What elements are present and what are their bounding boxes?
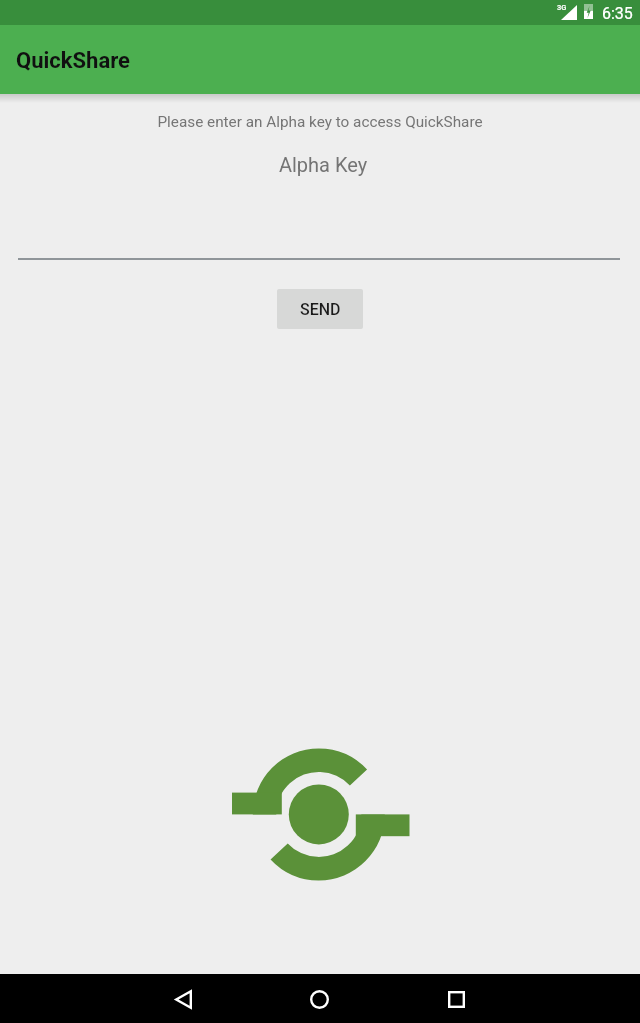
- staticText: QuickShare: [16, 48, 130, 74]
- staticText: Alpha Key: [22, 153, 624, 176]
- staticText: SEND: [300, 300, 341, 319]
- button[interactable]: Recents: [432, 975, 481, 1023]
- staticText: 3G: [557, 3, 567, 12]
- button[interactable]: SEND: [277, 289, 363, 329]
- button[interactable]: Back: [159, 975, 208, 1023]
- button[interactable]: Alpha Key: [18, 146, 620, 260]
- staticText: Please enter an Alpha key to access Quic…: [0, 113, 640, 131]
- staticText: 6:35: [602, 4, 633, 23]
- button[interactable]: Home: [295, 975, 344, 1023]
